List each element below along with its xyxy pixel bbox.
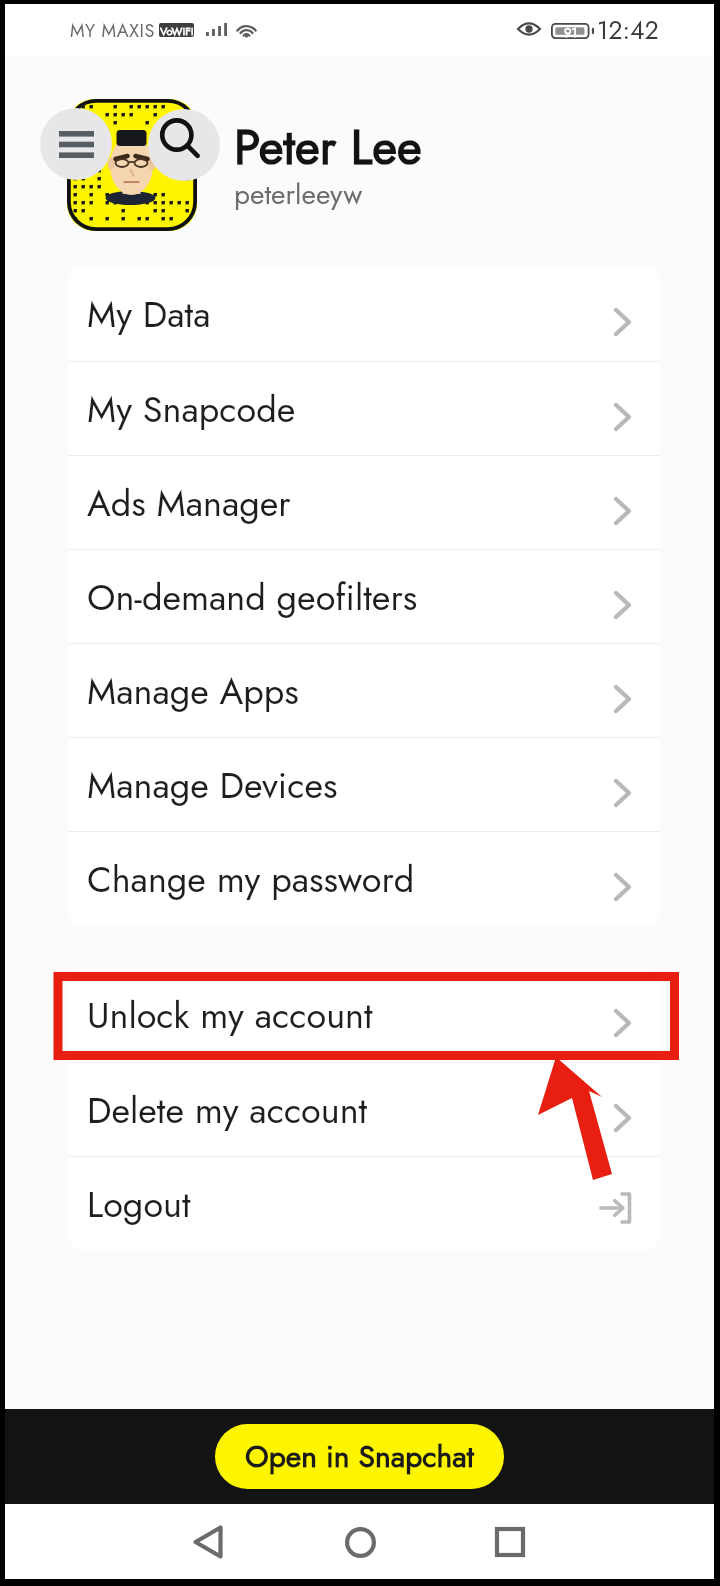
staticText: My Data (87, 288, 211, 340)
staticText: Delete my account (87, 1084, 368, 1136)
staticText: MY MAXIS (70, 18, 155, 44)
staticText: VoWiFi (160, 23, 194, 37)
button[interactable]: Home (330, 1512, 390, 1572)
button[interactable]: Change my password (68, 831, 660, 925)
staticText: Ads Manager (87, 477, 291, 529)
button[interactable]: Unlock my account (68, 968, 660, 1062)
button[interactable]: Search (148, 109, 220, 181)
button[interactable]: Manage Devices (68, 737, 660, 831)
staticText: Peter Lee (234, 113, 422, 182)
staticText: 91 (564, 23, 578, 39)
button[interactable]: Manage Apps (68, 643, 660, 737)
staticText: On-demand geofilters (87, 571, 418, 623)
button[interactable]: Delete my account (68, 1062, 660, 1156)
staticText: Unlock my account (87, 989, 373, 1041)
button[interactable]: On-demand geofilters (68, 549, 660, 643)
staticText: Change my password (87, 853, 415, 905)
button[interactable]: Back (178, 1512, 238, 1572)
staticText: Logout (87, 1178, 191, 1230)
button[interactable]: Menu (40, 108, 112, 180)
staticText: My Snapcode (87, 383, 296, 435)
staticText: peterleeyw (234, 174, 363, 214)
staticText: Manage Apps (87, 665, 299, 717)
staticText: 12:42 (597, 12, 659, 48)
staticText: Open in Snapchat (245, 1435, 474, 1478)
button[interactable]: Logout (68, 1156, 660, 1250)
button[interactable]: My Snapcode (68, 361, 660, 455)
staticText: Manage Devices (87, 759, 338, 811)
button[interactable]: Open in Snapchat (215, 1424, 504, 1489)
button[interactable]: My Data (68, 267, 660, 361)
button[interactable]: Ads Manager (68, 455, 660, 549)
button[interactable]: Recent apps (480, 1512, 540, 1572)
